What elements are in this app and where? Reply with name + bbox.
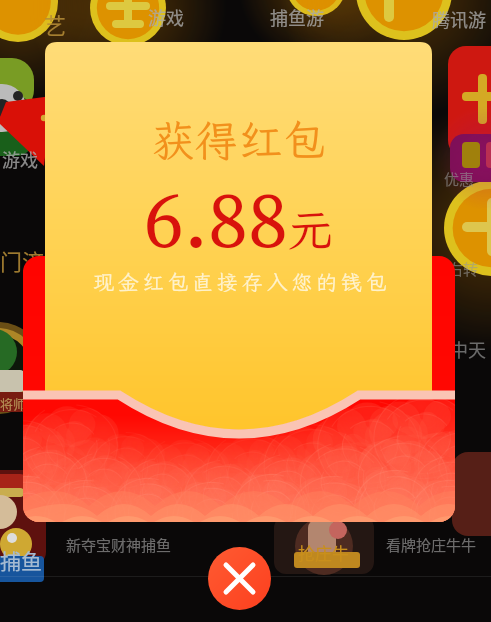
staticText: 艺 (44, 8, 67, 40)
staticText: 右转 (448, 258, 479, 280)
staticText: 优惠 (444, 168, 475, 190)
staticText: 看牌抢庄牛牛 (386, 534, 477, 556)
staticText: 捕鱼游 (270, 4, 324, 30)
staticText: 捕鱼 (0, 545, 42, 575)
staticText: 新夺宝财神捕鱼 (66, 534, 172, 556)
staticText: 游戏 (2, 146, 38, 172)
staticText: 将师 (0, 394, 27, 413)
staticText: 游戏 (148, 4, 184, 30)
staticText: 6.88 (144, 164, 288, 274)
staticText: 获得红包 (151, 112, 327, 169)
button[interactable]: Close (208, 547, 271, 610)
staticText: 门济 (0, 244, 45, 276)
staticText: 元 (288, 199, 334, 260)
staticText: 腾讯游 (432, 6, 486, 32)
staticText: 中天 (450, 336, 486, 362)
staticText: 现金红包直接存入您的钱包 (93, 268, 391, 296)
staticText: 抢庄牛 (298, 540, 349, 565)
